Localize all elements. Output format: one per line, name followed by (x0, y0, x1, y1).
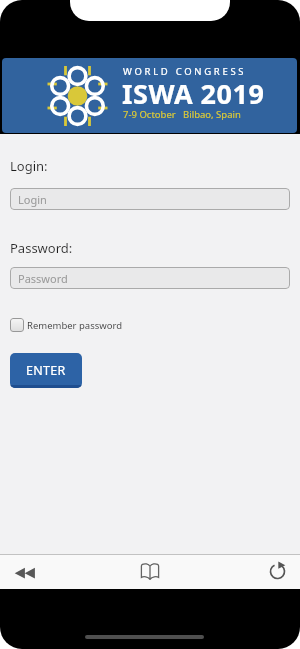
staticText: Remember password (27, 319, 123, 332)
button[interactable]: Remember password (10, 318, 123, 332)
button[interactable] (8, 560, 38, 586)
staticText: Login: (10, 157, 48, 175)
staticText: Password (18, 271, 68, 286)
staticText: 7-9 October Bilbao, Spain (123, 108, 241, 121)
staticText: ENTER (26, 362, 66, 379)
button[interactable]: ENTER (10, 353, 82, 388)
button[interactable]: Login (10, 188, 290, 210)
staticText: Login (18, 192, 47, 207)
button[interactable]: Password (10, 267, 290, 289)
staticText: ISWA 2019 (122, 75, 265, 112)
button[interactable] (136, 560, 164, 586)
staticText: WORLD CONGRESS (123, 65, 247, 78)
staticText: Password: (10, 239, 73, 257)
button[interactable] (263, 560, 291, 586)
